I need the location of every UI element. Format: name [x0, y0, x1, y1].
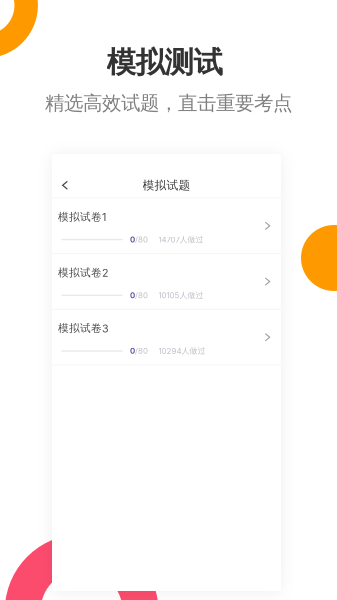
staticText: 模拟试卷1 — [58, 210, 106, 224]
staticText: 精选高效试题，直击重要考点 — [45, 91, 292, 115]
staticText: /80 — [135, 346, 148, 356]
staticText: 0 — [130, 290, 135, 300]
staticText: 模拟试卷3 — [58, 322, 109, 335]
staticText: /80 — [135, 290, 148, 300]
staticText: 14707人做过 — [158, 235, 203, 244]
staticText: 模拟试卷2 — [58, 266, 109, 279]
button[interactable]: 模拟试卷2 — [52, 254, 281, 309]
staticText: 0 — [130, 235, 135, 244]
button[interactable]: 模拟试卷3 — [52, 310, 281, 365]
staticText: 模拟测试 — [106, 44, 222, 81]
button[interactable]: Back — [52, 171, 78, 199]
staticText: /80 — [135, 235, 148, 244]
staticText: 模拟试题 — [142, 178, 190, 193]
button[interactable]: 模拟试卷1 — [52, 198, 281, 253]
staticText: 10105人做过 — [158, 290, 203, 300]
staticText: 0 — [130, 346, 135, 356]
staticText: 10294人做过 — [158, 346, 205, 356]
